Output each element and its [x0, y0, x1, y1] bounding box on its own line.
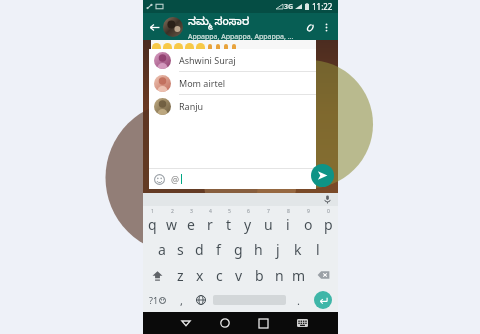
staticText: 1: [151, 208, 154, 215]
button[interactable]: 5: [219, 206, 238, 236]
staticText: ?1: [149, 294, 159, 306]
staticText: a: [158, 240, 166, 259]
staticText: g: [234, 240, 243, 259]
button[interactable]: k: [288, 236, 308, 262]
button[interactable]: Send: [311, 164, 334, 187]
staticText: 3: [190, 208, 193, 215]
staticText: 11:22: [312, 1, 333, 12]
staticText: x: [196, 266, 204, 285]
button[interactable]: 3: [181, 206, 200, 236]
button[interactable]: a: [152, 236, 171, 262]
staticText: 7: [267, 208, 270, 215]
button[interactable]: 2: [162, 206, 181, 236]
button[interactable]: ?1: [143, 288, 172, 312]
staticText: u: [264, 215, 273, 234]
staticText: s: [177, 240, 184, 259]
button[interactable]: ,: [172, 288, 191, 312]
button[interactable]: l: [308, 236, 328, 262]
staticText: f: [216, 240, 221, 259]
staticText: k: [294, 240, 302, 259]
button[interactable]: s: [171, 236, 190, 262]
staticText: q: [148, 215, 157, 234]
button[interactable]: Ashwini Suraj: [149, 49, 316, 71]
button[interactable]: Shift: [143, 262, 171, 288]
button[interactable]: b: [249, 262, 269, 288]
staticText: 6: [247, 208, 250, 215]
staticText: v: [235, 266, 243, 285]
staticText: 2: [171, 208, 174, 215]
button[interactable]: j: [268, 236, 288, 262]
button[interactable]: Attach: [300, 18, 318, 36]
button[interactable]: h: [248, 236, 268, 262]
staticText: 9: [307, 208, 310, 215]
staticText: 4: [209, 208, 212, 215]
button[interactable]: Voice input: [322, 194, 333, 205]
button[interactable]: Enter: [314, 291, 332, 309]
staticText: Appappa, Appappa, Appappa, As…: [188, 32, 297, 40]
staticText: @: [171, 173, 180, 185]
button[interactable]: 7: [258, 206, 278, 236]
staticText: y: [244, 215, 252, 234]
staticText: b: [255, 266, 264, 285]
button[interactable]: 4: [200, 206, 219, 236]
button[interactable]: Emoji: [153, 173, 166, 186]
button[interactable]: n: [269, 262, 289, 288]
staticText: ನಮ್ಮ ಸಂಸಾರ: [188, 13, 250, 31]
staticText: Ashwini Suraj: [179, 54, 236, 66]
staticText: 5: [228, 208, 231, 215]
button[interactable]: Recent apps: [244, 312, 283, 334]
staticText: Mom airtel: [179, 77, 226, 89]
button[interactable]: f: [209, 236, 228, 262]
button[interactable]: Hide keyboard: [283, 312, 322, 334]
staticText: n: [275, 266, 284, 285]
button[interactable]: z: [171, 262, 190, 288]
staticText: t: [226, 215, 232, 234]
staticText: ,: [180, 293, 183, 308]
button[interactable]: 6: [238, 206, 258, 236]
staticText: .: [297, 293, 300, 308]
button[interactable]: 9: [298, 206, 318, 236]
button[interactable]: d: [190, 236, 209, 262]
button[interactable]: Back: [146, 19, 162, 35]
staticText: r: [207, 215, 213, 234]
button[interactable]: 1: [143, 206, 162, 236]
button[interactable]: Backspace: [309, 262, 338, 288]
staticText: i: [286, 215, 290, 234]
button[interactable]: v: [229, 262, 249, 288]
button[interactable]: Mom airtel: [149, 72, 316, 94]
button[interactable]: Back: [166, 312, 205, 334]
staticText: z: [177, 266, 184, 285]
staticText: 0: [327, 208, 330, 215]
button[interactable]: 8: [278, 206, 298, 236]
staticText: w: [166, 215, 178, 234]
button[interactable]: 0: [318, 206, 338, 236]
staticText: d: [195, 240, 204, 259]
staticText: 8: [287, 208, 290, 215]
button[interactable]: More options: [318, 19, 334, 35]
staticText: c: [216, 266, 223, 285]
button[interactable]: x: [190, 262, 209, 288]
staticText: l: [316, 240, 320, 259]
staticText: e: [187, 215, 195, 234]
button[interactable]: Home: [205, 312, 244, 334]
staticText: j: [276, 240, 280, 259]
staticText: 3G: [284, 2, 294, 12]
button[interactable]: Change language: [191, 288, 210, 312]
button[interactable]: g: [228, 236, 248, 262]
staticText: p: [324, 215, 333, 234]
staticText: h: [254, 240, 263, 259]
button[interactable]: m: [289, 262, 309, 288]
staticText: m: [292, 266, 306, 285]
button[interactable]: c: [209, 262, 229, 288]
button[interactable]: .: [289, 288, 308, 312]
staticText: Ranju: [179, 100, 204, 112]
button[interactable]: Group photo: [163, 17, 183, 37]
staticText: o: [304, 215, 313, 234]
button[interactable]: Ranju: [149, 95, 316, 117]
